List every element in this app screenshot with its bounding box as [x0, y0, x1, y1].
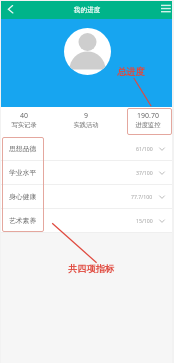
button[interactable]: 190.70 — [119, 107, 174, 137]
button[interactable]: 身心健康 — [0, 185, 174, 208]
staticText: 身心健康 — [9, 192, 37, 201]
staticText: 9 — [57, 111, 115, 121]
button[interactable]: 思想品德 — [0, 137, 174, 160]
staticText: 我的进度 — [74, 6, 101, 14]
button[interactable]: 学业水平 — [0, 161, 174, 184]
button[interactable]: 9 — [57, 107, 115, 137]
staticText: 写实记录 — [0, 121, 53, 129]
staticText: 思想品德 — [9, 144, 37, 153]
staticText: 61/100 — [136, 145, 153, 152]
button[interactable]: 40 — [0, 107, 53, 137]
staticText: 实践活动 — [57, 121, 115, 129]
staticText: 77.7/100 — [131, 193, 153, 200]
staticText: 15/100 — [136, 217, 153, 224]
staticText: 40 — [0, 111, 53, 121]
staticText: 37/100 — [136, 169, 153, 176]
button[interactable]: Menu — [152, 1, 174, 19]
staticText: 总进度 — [117, 66, 145, 78]
button[interactable]: Back — [0, 1, 20, 19]
staticText: 艺术素养 — [9, 216, 37, 225]
staticText: 共四项指标 — [68, 263, 114, 275]
staticText: 190.70 — [119, 111, 174, 121]
staticText: 进度监控 — [119, 121, 174, 129]
staticText: 学业水平 — [9, 168, 37, 177]
button[interactable]: 艺术素养 — [0, 209, 174, 232]
